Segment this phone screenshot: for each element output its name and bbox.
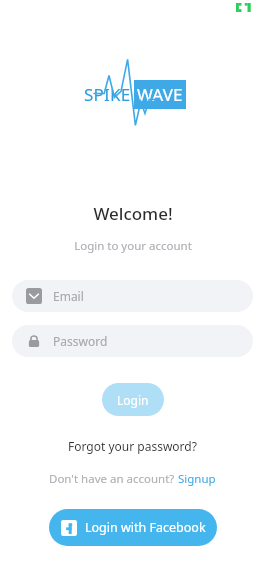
staticText: Don't have an account? [49,471,178,487]
staticText: Forgot your password? [68,438,197,454]
staticText: Signup [178,471,216,487]
button[interactable]: Password [12,325,253,357]
staticText: SPIKE [84,83,131,106]
staticText: Login with Facebook [85,519,206,536]
button[interactable]: Forgot your password? [62,435,203,457]
staticText: WAVE [137,83,183,106]
button[interactable]: Signup [178,471,216,487]
staticText: Password [53,333,108,349]
button[interactable]: Email [12,280,253,312]
staticText: Welcome! [93,202,173,225]
button[interactable]: Login [102,383,164,416]
staticText: Login to your account [74,238,192,254]
staticText: Login [117,392,149,408]
button[interactable]: Login with Facebook [49,509,217,546]
staticText: Email [53,288,84,304]
